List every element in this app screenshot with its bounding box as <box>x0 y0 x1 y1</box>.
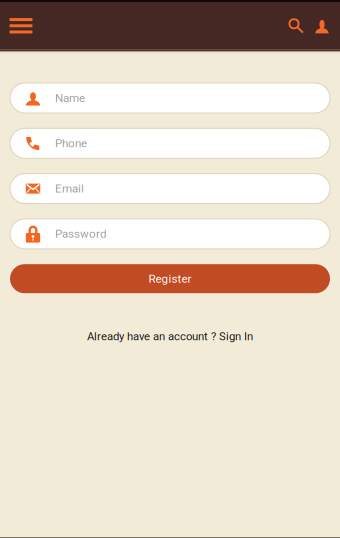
staticText: Phone <box>55 136 87 150</box>
button[interactable]: Register <box>10 264 330 293</box>
staticText: Already have an account ? Sign In <box>87 330 253 343</box>
button[interactable]: Account <box>309 2 334 49</box>
staticText: Name <box>55 91 85 105</box>
staticText: Email <box>55 182 84 195</box>
staticText: Password <box>55 227 107 241</box>
staticText: Register <box>148 272 191 286</box>
button[interactable]: Search <box>282 2 309 49</box>
button[interactable]: Already have an account ? Sign In <box>81 326 259 347</box>
button[interactable]: Menu <box>4 2 37 49</box>
